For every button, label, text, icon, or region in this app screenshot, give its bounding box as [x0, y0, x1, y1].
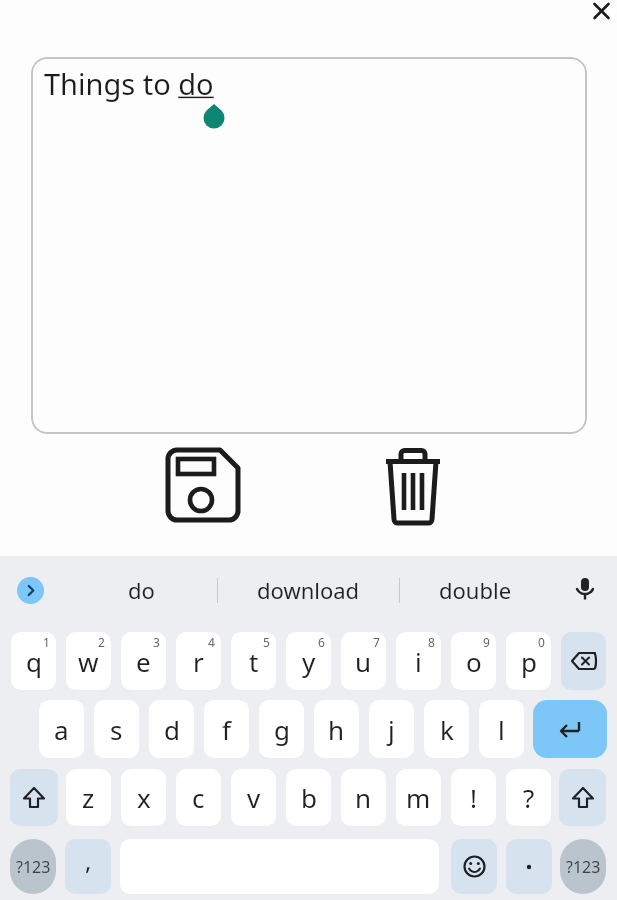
staticText: o [466, 644, 482, 679]
button[interactable]: q [11, 632, 56, 690]
staticText: 9 [483, 634, 490, 650]
button[interactable]: s [94, 700, 139, 758]
staticText: 8 [428, 634, 435, 650]
staticText: ?123 [16, 856, 51, 878]
staticText: 5 [263, 634, 270, 650]
staticText: w [78, 644, 99, 679]
staticText: k [440, 712, 454, 747]
button[interactable]: c [176, 769, 221, 826]
button[interactable]: download [236, 566, 380, 614]
button[interactable]: f [204, 700, 249, 758]
staticText: c [192, 780, 205, 815]
staticText: g [274, 712, 290, 747]
staticText: , [85, 844, 92, 877]
staticText: s [110, 712, 123, 747]
staticText: double [439, 575, 512, 605]
staticText: ! [470, 780, 477, 815]
staticText: a [54, 712, 69, 747]
button[interactable]: l [479, 700, 524, 758]
staticText: b [301, 780, 317, 815]
button[interactable]: , [65, 839, 111, 894]
button[interactable]: j [369, 700, 414, 758]
staticText: ?123 [566, 856, 601, 878]
staticText: n [355, 780, 372, 815]
staticText: do [128, 575, 155, 605]
button[interactable] [10, 769, 58, 826]
button[interactable]: o [451, 632, 496, 690]
staticText: Things to do [44, 64, 214, 103]
staticText: 1 [43, 634, 50, 650]
button[interactable] [162, 444, 244, 526]
button[interactable]: Things to do [31, 57, 587, 434]
button[interactable] [588, 0, 616, 26]
staticText: f [222, 712, 231, 747]
button[interactable]: ?123 [10, 839, 56, 894]
staticText: x [137, 780, 151, 815]
staticText: ? [523, 780, 535, 815]
staticText: l [498, 712, 505, 747]
button[interactable] [506, 839, 552, 894]
button[interactable]: g [259, 700, 304, 758]
button[interactable] [561, 632, 606, 690]
button[interactable]: a [39, 700, 84, 758]
staticText: 2 [98, 634, 105, 650]
button[interactable]: b [286, 769, 331, 826]
staticText: d [164, 712, 180, 747]
staticText: download [257, 575, 360, 605]
staticText: j [388, 712, 395, 747]
button[interactable] [17, 577, 44, 604]
button[interactable]: h [314, 700, 359, 758]
button[interactable]: y [286, 632, 331, 690]
button[interactable]: z [66, 769, 111, 826]
button[interactable]: ? [506, 769, 551, 826]
button[interactable] [451, 839, 497, 894]
staticText: 0 [538, 634, 545, 650]
staticText: 3 [153, 634, 160, 650]
button[interactable] [559, 769, 606, 826]
button[interactable]: ?123 [560, 839, 606, 894]
button[interactable] [570, 572, 600, 608]
staticText: e [136, 644, 151, 679]
button[interactable]: ! [451, 769, 496, 826]
staticText: r [193, 644, 204, 679]
button[interactable]: u [341, 632, 386, 690]
button[interactable]: n [341, 769, 386, 826]
staticText: z [82, 780, 95, 815]
button[interactable]: p [506, 632, 551, 690]
staticText: i [415, 644, 422, 679]
button[interactable]: i [396, 632, 441, 690]
staticText: 7 [373, 634, 380, 650]
staticText: q [26, 644, 42, 679]
button[interactable]: double [410, 566, 540, 614]
button[interactable] [533, 700, 607, 758]
staticText: u [355, 644, 372, 679]
button[interactable]: do [90, 566, 192, 614]
staticText: m [406, 780, 431, 815]
staticText: h [328, 712, 345, 747]
button[interactable]: v [231, 769, 276, 826]
staticText: 6 [318, 634, 325, 650]
button[interactable]: d [149, 700, 194, 758]
button[interactable]: k [424, 700, 469, 758]
staticText: t [249, 644, 259, 679]
button[interactable]: w [66, 632, 111, 690]
staticText: 4 [208, 634, 215, 650]
button[interactable] [378, 442, 448, 532]
staticText: v [247, 780, 261, 815]
staticText: p [521, 644, 537, 679]
button[interactable]: m [396, 769, 441, 826]
button[interactable]: x [121, 769, 166, 826]
button[interactable]: t [231, 632, 276, 690]
staticText: y [302, 644, 316, 679]
button[interactable]: r [176, 632, 221, 690]
button[interactable]: e [121, 632, 166, 690]
